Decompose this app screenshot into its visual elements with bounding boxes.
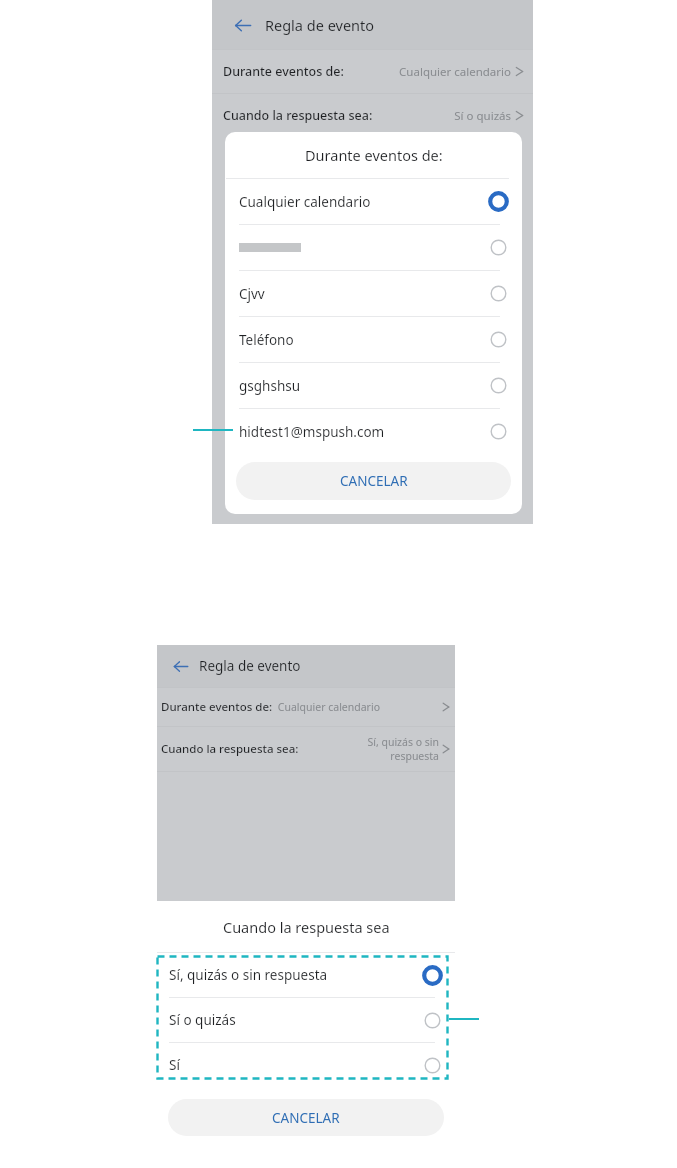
- staticText: Sí, quizás o sin respuesta: [169, 966, 328, 984]
- staticText: Sí o quizás: [169, 1011, 236, 1029]
- button[interactable]: hidtest1@mspush.com: [225, 409, 522, 454]
- button[interactable]: Durante eventos de:: [157, 688, 455, 726]
- staticText: CANCELAR: [272, 1109, 340, 1127]
- staticText: Durante eventos de:: [223, 63, 344, 80]
- button[interactable]: Back: [225, 8, 259, 42]
- staticText: Sí: [169, 1056, 180, 1074]
- staticText: gsghshsu: [239, 377, 301, 395]
- staticText: Durante eventos de:: [161, 699, 273, 715]
- button[interactable]: Sí o quizás: [157, 998, 455, 1042]
- button[interactable]: Cualquier calendario: [225, 179, 522, 224]
- staticText: Cualquier calendario: [399, 64, 511, 80]
- staticText: Teléfono: [239, 331, 294, 349]
- button[interactable]: CANCELAR: [236, 462, 511, 500]
- staticText: Regla de evento: [199, 657, 301, 675]
- staticText: Cuando la respuesta sea:: [223, 107, 373, 124]
- staticText: Cuando la respuesta sea:: [161, 741, 299, 757]
- staticText: Cuando la respuesta sea: [223, 917, 390, 937]
- button[interactable]: Cuando la respuesta sea:: [157, 727, 455, 771]
- staticText: hidtest1@mspush.com: [239, 423, 385, 441]
- button[interactable]: Sí: [157, 1043, 455, 1087]
- button[interactable]: gsghshsu: [225, 363, 522, 408]
- staticText: Cualquier calendario: [277, 700, 380, 714]
- staticText: Cualquier calendario: [239, 193, 371, 211]
- button[interactable]: CANCELAR: [168, 1099, 444, 1136]
- button[interactable]: [225, 225, 522, 270]
- staticText: CANCELAR: [340, 472, 408, 490]
- button[interactable]: Sí, quizás o sin respuesta: [157, 953, 455, 997]
- button[interactable]: Cjvv: [225, 271, 522, 316]
- staticText: Regla de evento: [265, 15, 375, 35]
- staticText: Sí, quizás o sin respuesta: [367, 735, 439, 763]
- staticText: Cjvv: [239, 285, 265, 303]
- button[interactable]: Teléfono: [225, 317, 522, 362]
- button[interactable]: Durante eventos de:: [212, 50, 533, 93]
- staticText: Sí o quizás: [454, 108, 511, 124]
- button[interactable]: Cuando la respuesta sea:: [212, 94, 533, 137]
- staticText: Durante eventos de:: [305, 145, 443, 165]
- button[interactable]: Back: [165, 651, 195, 681]
